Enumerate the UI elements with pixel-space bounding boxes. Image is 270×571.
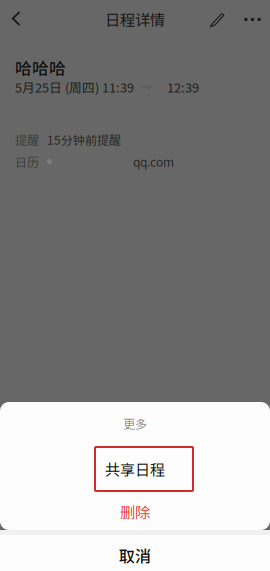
button[interactable]: Back	[0, 1, 31, 31]
staticText: 删除	[120, 500, 150, 523]
staticText: qq.com	[133, 153, 174, 170]
staticText: 日程详情	[105, 8, 165, 30]
button[interactable]: 共享日程	[0, 445, 270, 493]
staticText: 12:39	[167, 78, 199, 96]
staticText: 15分钟前提醒	[47, 131, 121, 148]
button[interactable]: Edit	[203, 1, 232, 32]
staticText: 取消	[119, 544, 151, 567]
staticText: 日历	[15, 153, 39, 170]
staticText: 更多	[123, 415, 147, 432]
staticText: 哈哈哈	[15, 55, 66, 79]
button[interactable]: 取消	[0, 535, 270, 571]
button[interactable]: 删除	[0, 493, 270, 530]
staticText: 共享日程	[105, 458, 165, 480]
staticText: 5月25日 (周四) 11:39	[15, 78, 134, 96]
staticText: 提醒	[15, 131, 39, 148]
button[interactable]: More options	[232, 1, 266, 32]
